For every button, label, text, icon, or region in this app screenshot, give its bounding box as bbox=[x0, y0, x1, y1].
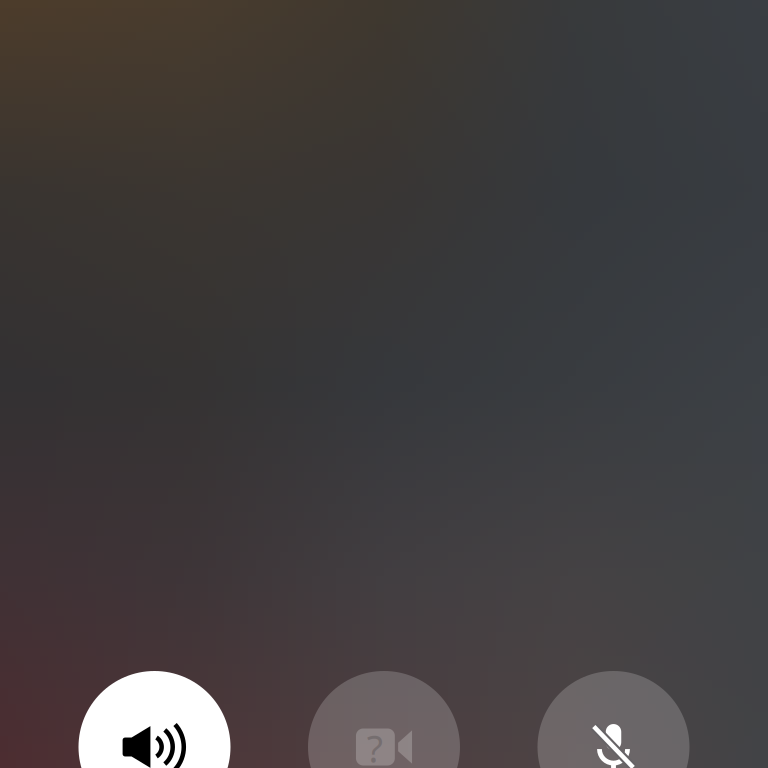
button[interactable]: Video bbox=[308, 671, 460, 768]
staticText: ? bbox=[367, 723, 383, 768]
button[interactable]: Unmute bbox=[537, 671, 689, 768]
button[interactable]: Speaker on bbox=[78, 671, 230, 768]
